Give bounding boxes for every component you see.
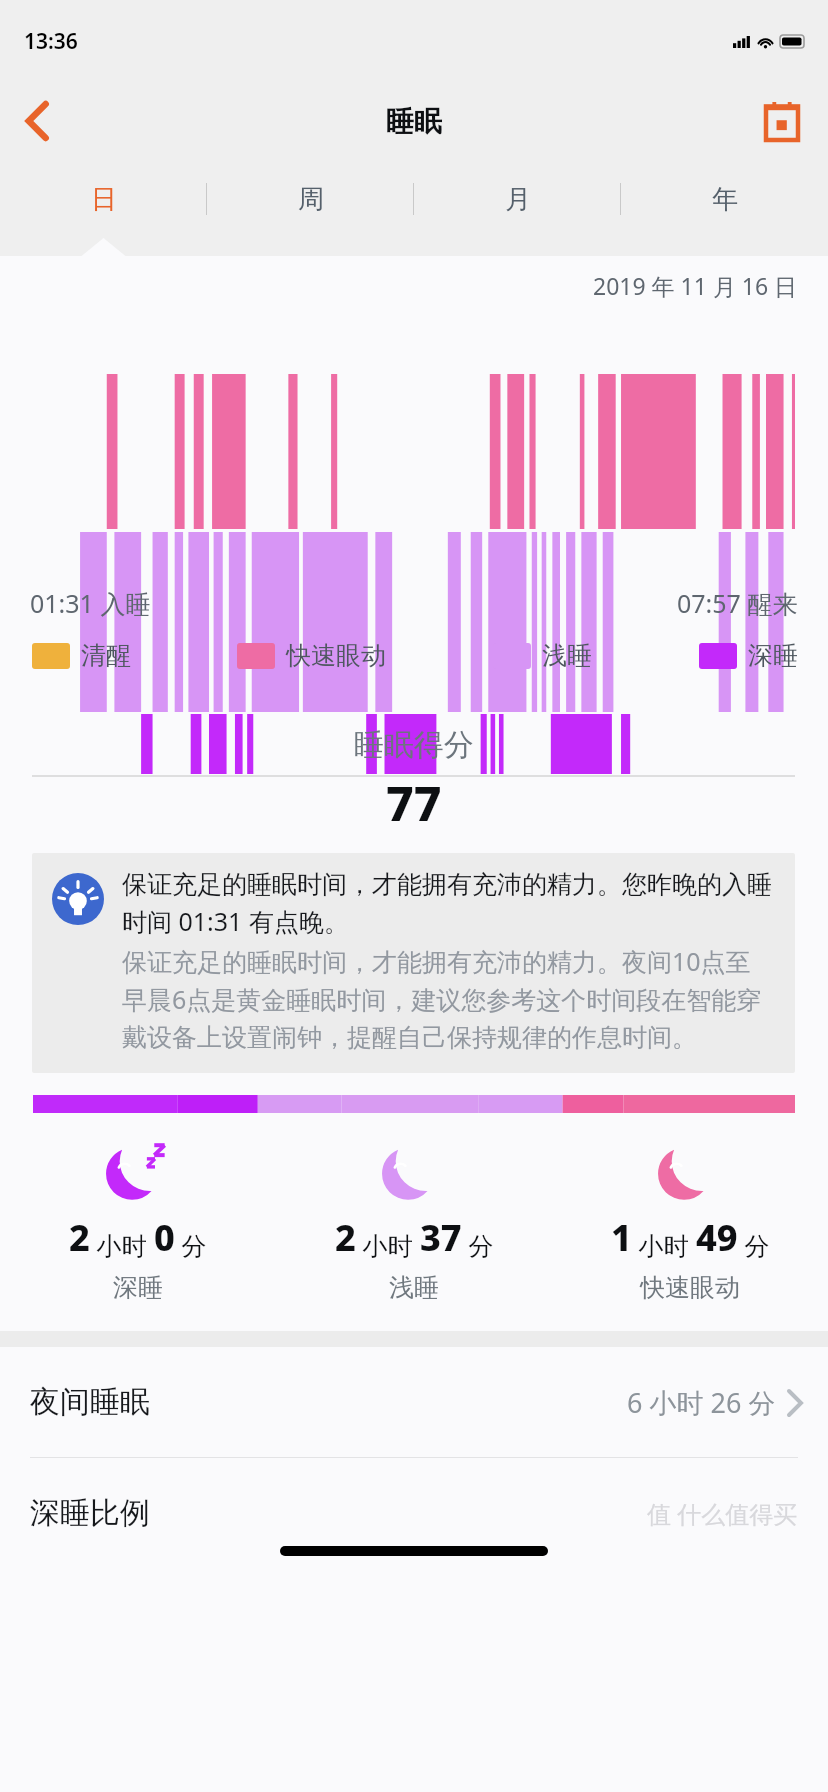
button[interactable]: 返回: [10, 93, 66, 149]
staticText: 1: [611, 1213, 632, 1262]
staticText: 年: [712, 183, 738, 216]
staticText: 49: [696, 1213, 738, 1262]
staticText: 清醒: [81, 640, 131, 671]
button[interactable]: 保证充足的睡眠时间，才能拥有充沛的精力。您昨晚的入睡时间 01:31 有点晚。: [32, 853, 795, 1073]
staticText: 保证充足的睡眠时间，才能拥有充沛的精力。您昨晚的入睡时间 01:31 有点晚。: [122, 869, 773, 938]
staticText: 保证充足的睡眠时间，才能拥有充沛的精力。夜间10点至早晨6点是黄金睡眠时间，建议…: [122, 944, 773, 1053]
staticText: 2: [69, 1213, 90, 1262]
staticText: 01:31 入睡: [30, 586, 151, 620]
staticText: 分: [175, 1228, 207, 1262]
button[interactable]: 年: [621, 160, 828, 238]
staticText: 周: [298, 183, 324, 216]
staticText: 6 小时 26 分: [627, 1384, 776, 1421]
staticText: 快速眼动: [286, 640, 386, 671]
button[interactable]: 日历: [754, 93, 810, 149]
button[interactable]: 月: [414, 160, 621, 238]
staticText: 分: [462, 1228, 494, 1262]
button[interactable]: 深睡比例: [0, 1458, 828, 1568]
staticText: 小时: [356, 1228, 420, 1262]
staticText: 月: [505, 183, 531, 216]
staticText: 2019 年 11 月 16 日: [593, 270, 798, 301]
staticText: 日: [91, 183, 117, 216]
staticText: 07:57 醒来: [677, 586, 798, 620]
staticText: 夜间睡眠: [30, 1383, 150, 1421]
staticText: 2: [335, 1213, 356, 1262]
staticText: 13:36: [24, 27, 78, 56]
staticText: 浅睡: [389, 1272, 439, 1303]
staticText: 小时: [632, 1228, 696, 1262]
staticText: 浅睡: [542, 640, 592, 671]
staticText: 37: [420, 1213, 462, 1262]
staticText: 值 什么值得买: [647, 1497, 798, 1530]
staticText: 0: [154, 1213, 175, 1262]
staticText: 深睡比例: [30, 1494, 150, 1532]
staticText: 睡眠: [386, 104, 442, 139]
staticText: 快速眼动: [640, 1272, 740, 1303]
button[interactable]: 日: [0, 160, 207, 238]
staticText: 分: [738, 1228, 770, 1262]
staticText: 深睡: [748, 640, 798, 671]
staticText: 小时: [90, 1228, 154, 1262]
staticText: 深睡: [113, 1272, 163, 1303]
staticText: 睡眠得分: [354, 726, 474, 764]
staticText: 77: [386, 770, 442, 835]
button[interactable]: 周: [207, 160, 414, 238]
button[interactable]: 夜间睡眠: [0, 1347, 828, 1457]
